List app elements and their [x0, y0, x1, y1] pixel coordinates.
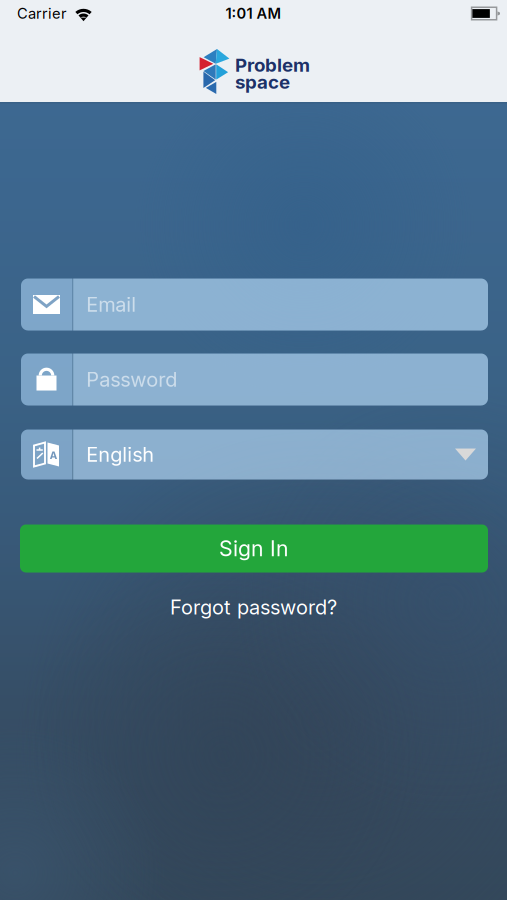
button[interactable]: Sign In: [20, 524, 488, 572]
button[interactable]: Email: [21, 278, 488, 330]
staticText: Sign In: [219, 536, 289, 561]
button[interactable]: Forgot password?: [170, 595, 337, 619]
button[interactable]: A: [21, 429, 488, 479]
staticText: English: [86, 443, 154, 466]
staticText: space: [235, 71, 290, 93]
staticText: Problem: [235, 54, 310, 76]
staticText: Email: [86, 293, 136, 316]
button[interactable]: Password: [21, 353, 488, 405]
staticText: A: [49, 449, 57, 462]
staticText: Password: [86, 368, 177, 391]
staticText: 1:01 AM: [225, 5, 281, 22]
staticText: Carrier: [17, 5, 67, 22]
staticText: Forgot password?: [170, 595, 337, 619]
